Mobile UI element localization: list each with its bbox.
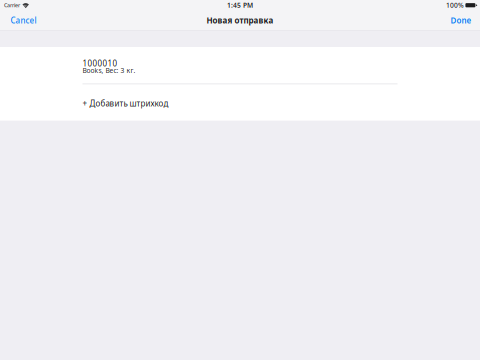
button[interactable]: 1000010 [0, 47, 480, 83]
button[interactable]: + Добавить штрихкод [0, 85, 480, 121]
staticText: Done [450, 15, 471, 26]
staticText: Новая отправка [206, 15, 273, 26]
button[interactable]: Cancel [4, 10, 42, 30]
staticText: Carrier [4, 2, 20, 9]
staticText: Books, Вес: 3 кг. [82, 66, 135, 75]
staticText: Cancel [10, 15, 36, 26]
staticText: 1000010 [82, 58, 117, 69]
staticText: 1:45 PM [227, 1, 253, 10]
staticText: + Добавить штрихкод [82, 98, 168, 109]
button[interactable]: Done [444, 10, 477, 30]
staticText: 100% [446, 1, 464, 10]
